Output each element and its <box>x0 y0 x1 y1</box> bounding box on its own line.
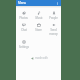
button[interactable]: Settings <box>16 40 31 49</box>
staticText: Store <box>35 28 42 32</box>
staticText: Send money <box>46 28 61 36</box>
button[interactable]: Chat <box>16 23 31 32</box>
button[interactable]: People <box>46 11 61 20</box>
staticText: Chat <box>21 28 27 32</box>
button[interactable]: Send money <box>46 23 61 36</box>
button[interactable]: Menu <box>16 0 61 6</box>
button[interactable]: More options <box>55 1 60 6</box>
button[interactable]: Music <box>31 11 46 20</box>
staticText: made with <box>35 56 48 60</box>
staticText: Photos <box>19 16 28 20</box>
button[interactable]: Photos <box>16 11 31 20</box>
button[interactable]: made with <box>31 56 48 60</box>
staticText: Settings <box>19 45 29 49</box>
staticText: Music <box>35 16 43 20</box>
staticText: Menu <box>18 1 27 5</box>
staticText: People <box>49 16 58 20</box>
button[interactable]: Store <box>31 23 46 32</box>
